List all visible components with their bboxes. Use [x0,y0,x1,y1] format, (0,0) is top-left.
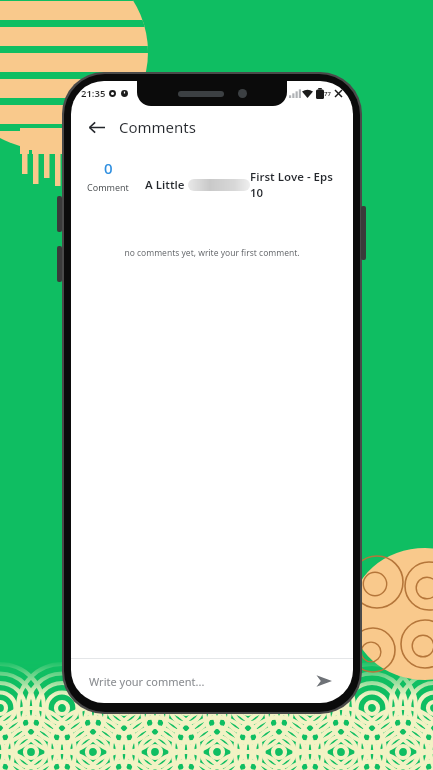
staticText: Write your comment... [89,674,205,689]
staticText: no comments yet, write your first commen… [124,247,300,259]
button[interactable]: Back [79,110,113,144]
button[interactable]: Send [311,668,337,694]
staticText: 0 [104,158,113,178]
staticText: Comment [87,181,129,193]
staticText: Comments [119,117,196,137]
staticText: 21:35 [81,87,106,100]
staticText: A Little [145,177,188,193]
staticText: First Love - Eps 10 [250,169,347,201]
staticText: 77 [324,90,331,98]
button[interactable]: Write your comment... [71,659,353,703]
